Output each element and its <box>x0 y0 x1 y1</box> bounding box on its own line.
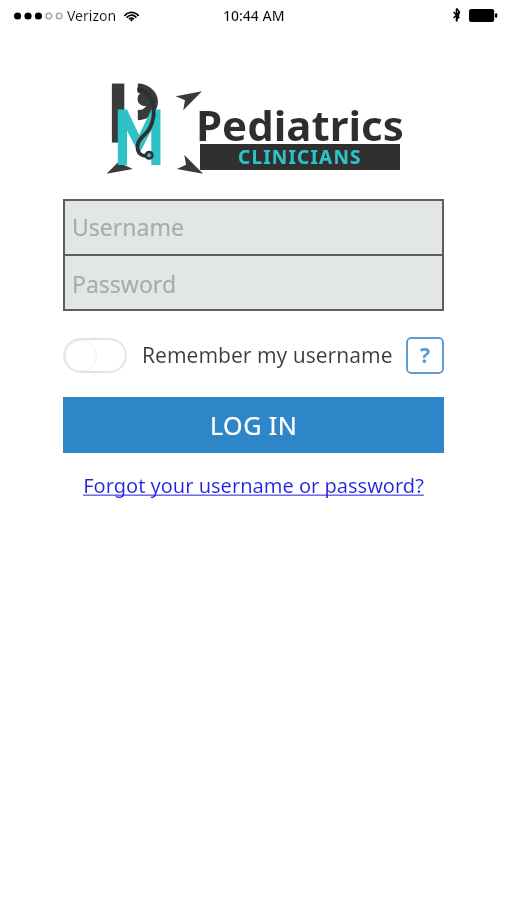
button[interactable]: Remember my username toggle <box>63 338 127 373</box>
staticText: CLINICIANS <box>238 144 362 170</box>
button[interactable]: Password <box>63 256 444 311</box>
staticText: 10:44 AM <box>223 6 285 25</box>
staticText: Password <box>72 268 177 299</box>
staticText: Pediatrics <box>196 96 404 153</box>
button[interactable]: Username <box>63 199 444 254</box>
button[interactable]: Help <box>406 337 444 374</box>
staticText: Forgot your username or password? <box>83 472 424 499</box>
staticText: Remember my username <box>142 341 393 370</box>
staticText: Username <box>72 211 184 242</box>
button[interactable]: LOG IN <box>63 397 444 453</box>
staticText: ? <box>420 341 431 370</box>
staticText: Verizon <box>67 6 117 25</box>
button[interactable]: Forgot your username or password? <box>77 470 430 501</box>
staticText: LOG IN <box>210 408 298 442</box>
